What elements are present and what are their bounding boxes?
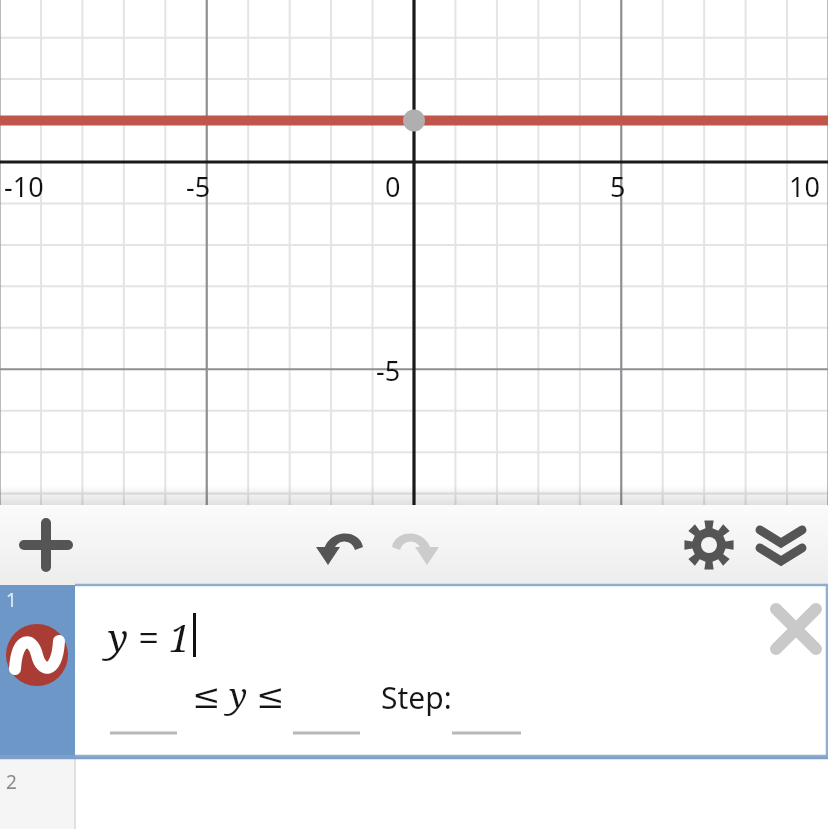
button[interactable]: Add expression [14,513,78,577]
staticText: -10 [4,168,44,205]
staticText: Step: [381,677,452,718]
button[interactable]: Redo [382,513,446,577]
staticText: 0 [385,168,401,205]
staticText: -5 [376,352,401,389]
button[interactable]: Undo [309,513,373,577]
staticText: 10 [789,168,820,205]
staticText: 5 [610,168,626,205]
staticText: y = 1 [108,611,191,663]
button[interactable]: Settings [677,513,741,577]
staticText: 2 [6,769,17,795]
button[interactable]: Collapse [749,513,813,577]
staticText: 1 [6,587,17,613]
button[interactable]: 1 [0,585,828,757]
button[interactable]: 2 [0,757,828,829]
staticText: ≤ y ≤ [192,672,285,718]
staticText: -5 [186,168,211,205]
